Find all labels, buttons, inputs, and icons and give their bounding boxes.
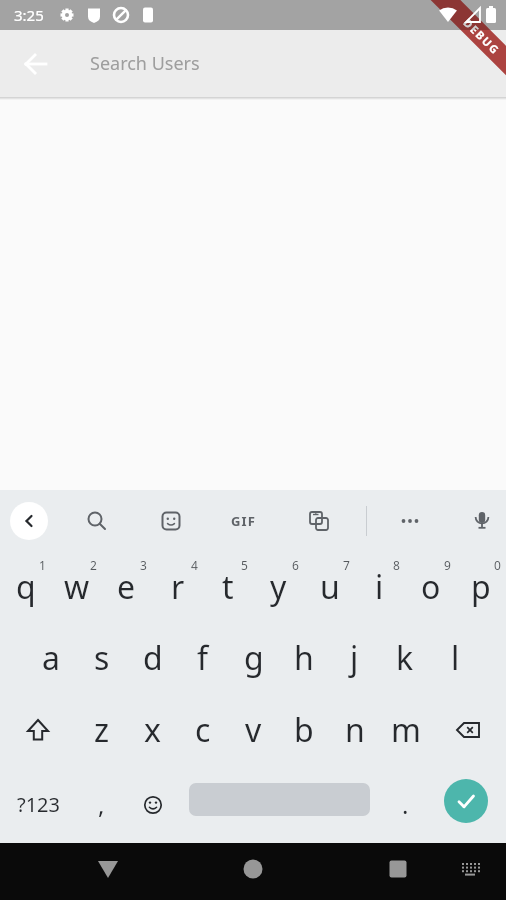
staticText: GIF: [231, 512, 257, 530]
staticText: l: [451, 636, 460, 680]
button[interactable]: [460, 497, 504, 545]
button[interactable]: e: [101, 552, 152, 622]
button[interactable]: [444, 779, 488, 823]
staticText: 8: [393, 557, 400, 573]
button[interactable]: a: [25, 622, 76, 694]
staticText: 5: [241, 557, 248, 573]
staticText: t: [222, 565, 234, 609]
button[interactable]: v: [228, 694, 279, 766]
button[interactable]: b: [278, 694, 329, 766]
staticText: g: [244, 636, 264, 680]
staticText: 4: [191, 557, 198, 573]
button[interactable]: [229, 849, 277, 889]
staticText: 3: [140, 557, 147, 573]
button[interactable]: ?123: [0, 766, 76, 843]
staticText: 7: [343, 557, 350, 573]
button[interactable]: [147, 497, 195, 545]
staticText: i: [375, 565, 384, 609]
button[interactable]: [374, 849, 422, 889]
button[interactable]: x: [127, 694, 178, 766]
button[interactable]: [10, 502, 48, 540]
staticText: s: [94, 636, 110, 680]
button[interactable]: q: [0, 552, 51, 622]
button[interactable]: h: [278, 622, 329, 694]
button[interactable]: .: [380, 766, 431, 843]
staticText: b: [294, 708, 314, 752]
button[interactable]: [295, 497, 343, 545]
button[interactable]: g: [228, 622, 279, 694]
staticText: .: [402, 788, 409, 821]
button[interactable]: [430, 694, 506, 766]
staticText: u: [320, 565, 340, 609]
button[interactable]: k: [379, 622, 430, 694]
staticText: ,: [98, 788, 105, 821]
button[interactable]: p: [455, 552, 506, 622]
staticText: 0: [494, 557, 501, 573]
button[interactable]: n: [329, 694, 380, 766]
staticText: 2: [90, 557, 97, 573]
staticText: z: [94, 708, 110, 752]
button[interactable]: t: [202, 552, 253, 622]
button[interactable]: c: [177, 694, 228, 766]
button[interactable]: Search Users: [90, 51, 506, 76]
staticText: e: [117, 565, 136, 609]
button[interactable]: [386, 497, 434, 545]
button[interactable]: f: [177, 622, 228, 694]
button[interactable]: [8, 36, 64, 92]
staticText: 3:25: [14, 5, 44, 25]
staticText: Search Users: [90, 51, 200, 76]
staticText: d: [143, 636, 163, 680]
staticText: o: [421, 565, 441, 609]
button[interactable]: [450, 849, 490, 889]
button[interactable]: j: [329, 622, 380, 694]
staticText: p: [471, 565, 491, 609]
button[interactable]: i: [354, 552, 405, 622]
button[interactable]: [127, 766, 178, 843]
button[interactable]: r: [152, 552, 203, 622]
button[interactable]: [0, 694, 76, 766]
staticText: v: [245, 708, 262, 752]
staticText: x: [144, 708, 161, 752]
button[interactable]: y: [253, 552, 304, 622]
staticText: f: [197, 636, 209, 680]
button[interactable]: w: [51, 552, 102, 622]
staticText: h: [294, 636, 314, 680]
button[interactable]: [84, 849, 132, 889]
button[interactable]: o: [405, 552, 456, 622]
staticText: j: [350, 636, 359, 680]
button[interactable]: d: [127, 622, 178, 694]
staticText: 6: [292, 557, 299, 573]
staticText: n: [345, 708, 365, 752]
staticText: 1: [39, 557, 46, 573]
button[interactable]: l: [430, 622, 481, 694]
staticText: a: [42, 636, 60, 680]
staticText: r: [171, 565, 185, 609]
button[interactable]: u: [304, 552, 355, 622]
staticText: k: [396, 636, 414, 680]
button[interactable]: s: [76, 622, 127, 694]
staticText: c: [195, 708, 211, 752]
staticText: m: [391, 708, 421, 752]
staticText: DEBUG: [460, 15, 503, 58]
button[interactable]: [73, 497, 121, 545]
button[interactable]: GIF: [218, 497, 270, 545]
staticText: w: [64, 565, 90, 609]
staticText: y: [270, 565, 287, 609]
button[interactable]: m: [380, 694, 431, 766]
button[interactable]: z: [76, 694, 127, 766]
staticText: ?123: [17, 791, 60, 818]
button[interactable]: ,: [76, 766, 127, 843]
staticText: q: [16, 565, 36, 609]
staticText: 9: [444, 557, 451, 573]
